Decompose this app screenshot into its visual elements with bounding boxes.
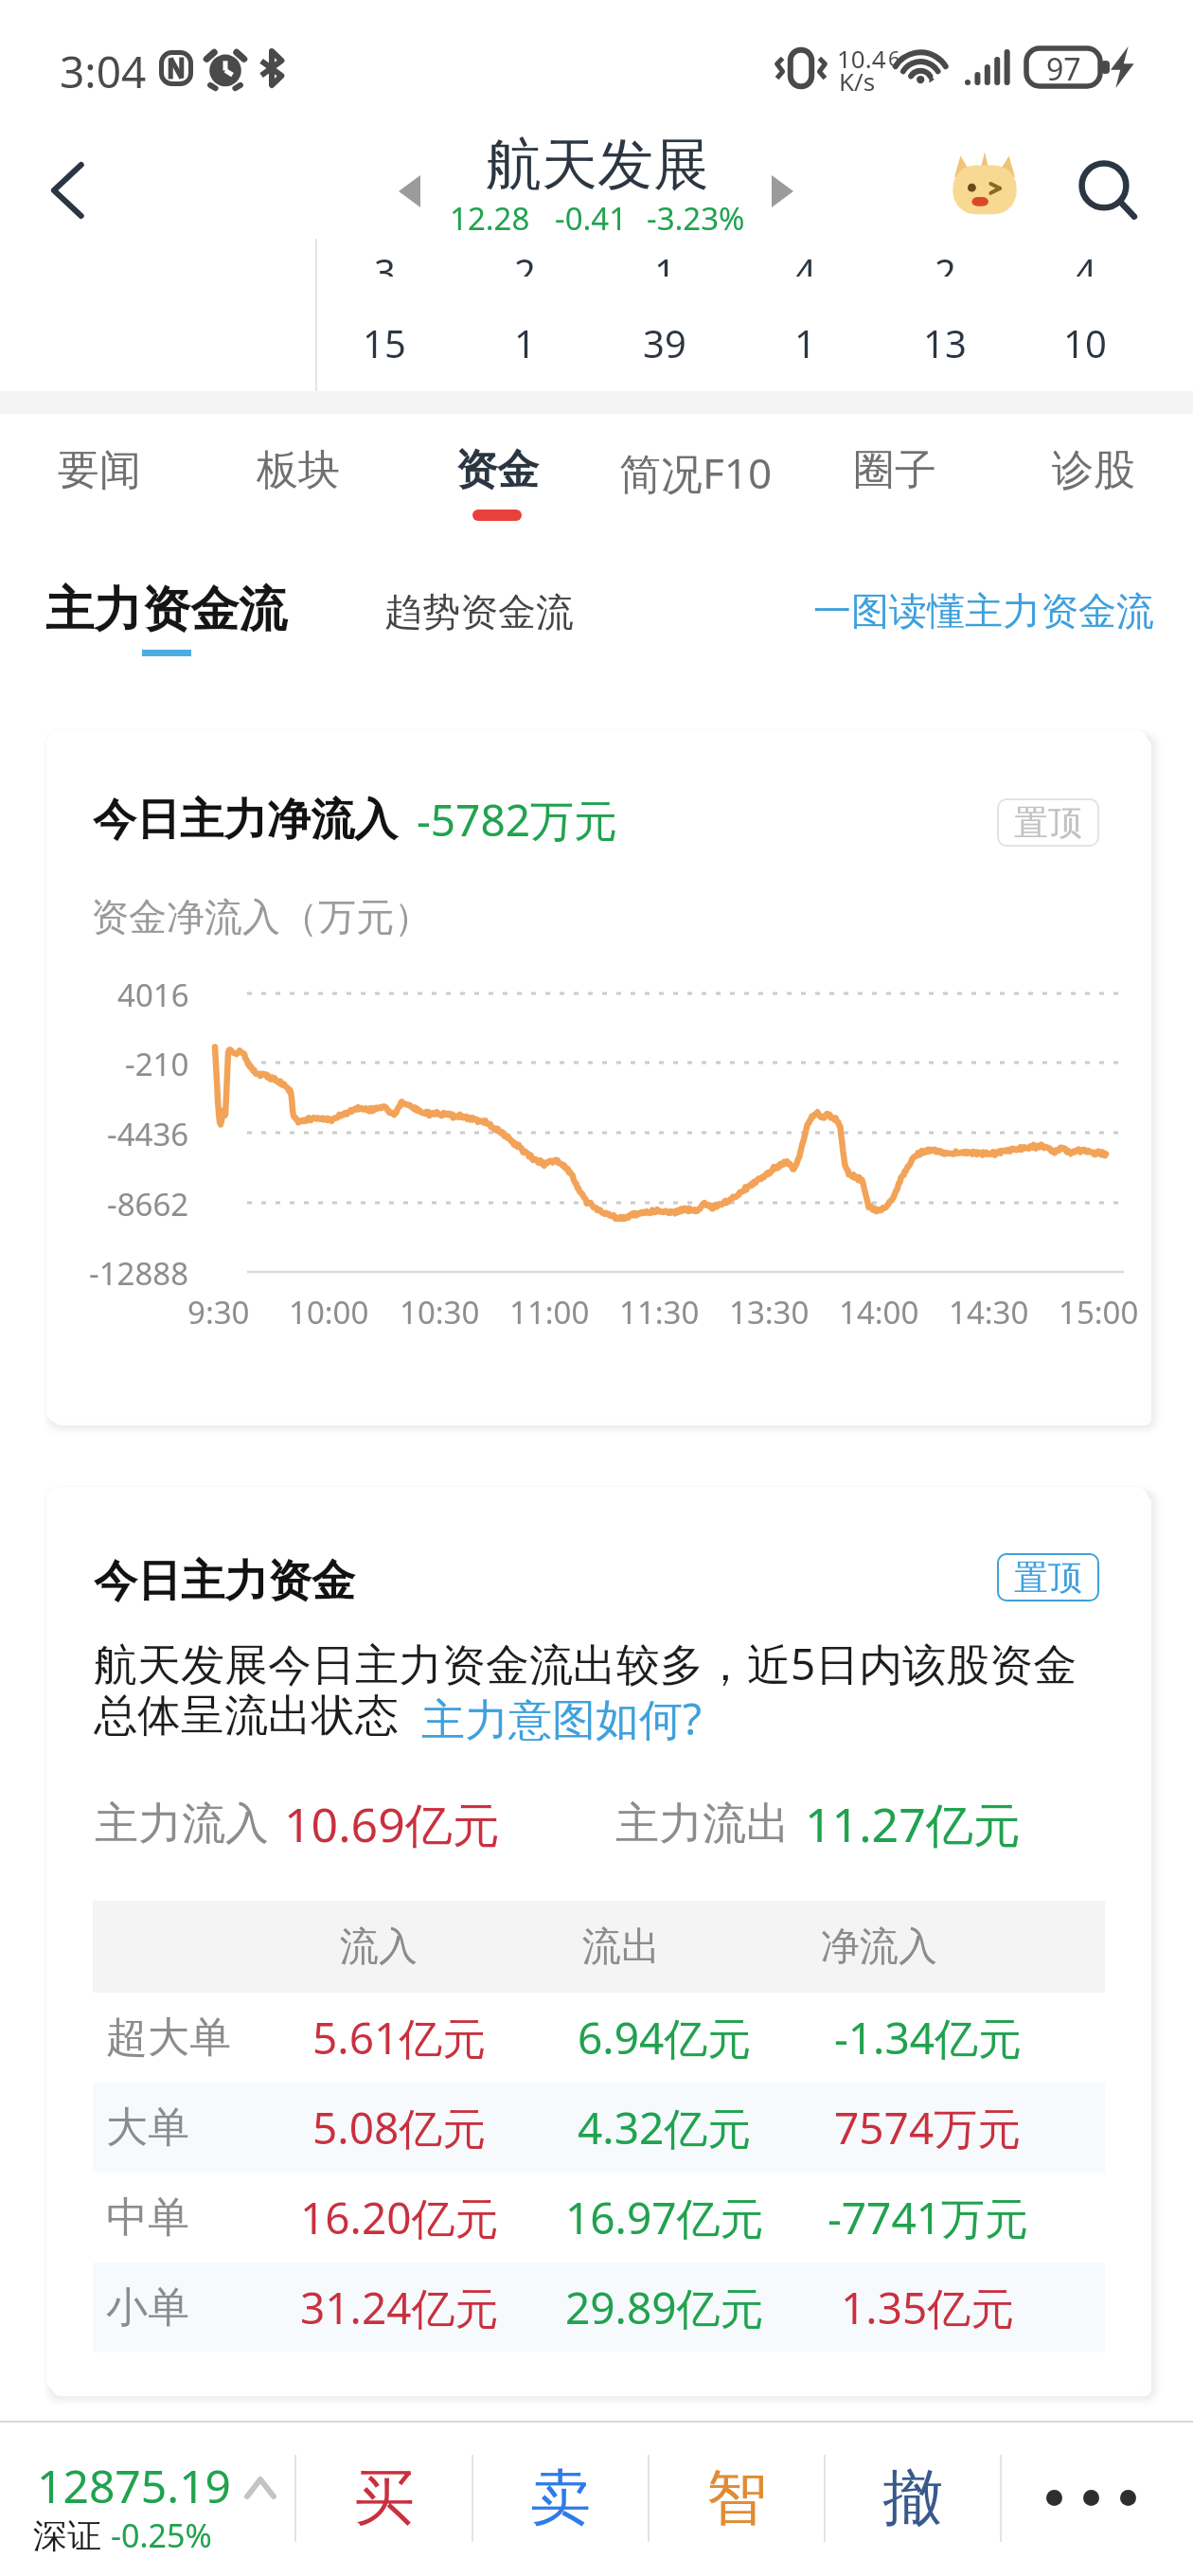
button[interactable]: 简况F10 <box>596 414 795 530</box>
button[interactable]: 卖 <box>473 2421 648 2574</box>
staticText: -3.23% <box>647 197 745 240</box>
staticText: 4016 <box>117 974 189 1013</box>
staticText: 6 <box>888 44 900 72</box>
staticText: 4.32亿元 <box>578 2098 752 2157</box>
button[interactable]: More <box>1002 2421 1180 2574</box>
button[interactable]: 板块 <box>199 414 398 530</box>
staticText: 板块 <box>257 444 340 496</box>
staticText: 总体呈流出状态 <box>94 1689 399 1744</box>
button[interactable]: 智 <box>650 2421 824 2574</box>
staticText: 1.35亿元 <box>841 2278 1015 2337</box>
staticText: -7741万元 <box>828 2188 1029 2247</box>
staticText: 10 <box>1063 317 1107 360</box>
staticText: 1 <box>654 259 676 277</box>
staticText: 15:00 <box>1059 1291 1139 1333</box>
staticText: -8662 <box>107 1183 189 1223</box>
button[interactable]: 资金 <box>398 414 596 530</box>
staticText: 39 <box>643 317 686 360</box>
staticText: 圈子 <box>853 444 936 496</box>
staticText: 深证 <box>33 2514 101 2557</box>
staticText: 买 <box>354 2460 415 2536</box>
staticText: 2 <box>514 259 536 277</box>
staticText: 置顶 <box>1014 1556 1082 1599</box>
staticText: 趋势资金流 <box>384 588 574 635</box>
staticText: 5.08亿元 <box>312 2098 487 2157</box>
staticText: 流入 <box>340 1923 418 1972</box>
button[interactable]: 12875.19 <box>19 2443 284 2561</box>
button[interactable]: 要闻 <box>0 414 199 530</box>
button[interactable]: 趋势资金流 <box>384 588 574 635</box>
staticText: 1 <box>514 317 536 360</box>
staticText: 12875.19 <box>37 2455 232 2516</box>
staticText: -4436 <box>107 1113 189 1153</box>
staticText: 一图读懂主力资金流 <box>813 587 1154 635</box>
staticText: 15 <box>363 317 406 360</box>
button[interactable]: 置顶 <box>997 798 1099 847</box>
staticText: 97 <box>1046 48 1081 86</box>
staticText: 主力流出 <box>615 1797 790 1851</box>
staticText: 14:00 <box>839 1291 919 1333</box>
staticText: 4 <box>1075 259 1096 277</box>
staticText: 超大单 <box>106 2012 231 2064</box>
staticText: 卖 <box>530 2460 591 2536</box>
staticText: 10:30 <box>400 1291 480 1333</box>
staticText: 航天发展 <box>486 130 709 200</box>
staticText: 流出 <box>582 1923 660 1972</box>
staticText: 11:30 <box>619 1291 700 1333</box>
staticText: 撤 <box>882 2460 943 2536</box>
staticText: K/s <box>839 64 876 98</box>
staticText: -12888 <box>89 1252 189 1292</box>
staticText: 4 <box>794 259 816 277</box>
button[interactable]: 置顶 <box>997 1553 1099 1601</box>
staticText: -0.25% <box>111 2513 212 2557</box>
button[interactable]: 主力资金流 <box>45 580 287 656</box>
staticText: 11:00 <box>509 1291 590 1333</box>
button[interactable]: Search <box>1074 152 1148 225</box>
staticText: 中单 <box>106 2191 189 2244</box>
staticText: 9:30 <box>187 1291 250 1333</box>
staticText: 2 <box>935 259 956 277</box>
button[interactable]: 诊股 <box>994 414 1193 530</box>
staticText: 3:04 <box>60 42 147 101</box>
staticText: 诊股 <box>1052 444 1135 496</box>
staticText: 10.69亿元 <box>284 1792 500 1856</box>
staticText: 置顶 <box>1014 801 1082 844</box>
staticText: 16.97亿元 <box>565 2188 764 2247</box>
staticText: 今日主力资金 <box>94 1554 355 1609</box>
staticText: -210 <box>125 1043 189 1082</box>
button[interactable]: Back <box>9 116 123 239</box>
button[interactable]: 买 <box>296 2421 472 2574</box>
staticText: 31.24亿元 <box>300 2278 499 2337</box>
staticText: 5.61亿元 <box>312 2008 487 2067</box>
staticText: 10.4 <box>837 42 886 75</box>
staticText: 11.27亿元 <box>805 1792 1021 1856</box>
staticText: 净流入 <box>821 1923 937 1972</box>
button[interactable]: 主力意图如何? <box>421 1689 702 1748</box>
staticText: 主力流入 <box>95 1797 269 1851</box>
staticText: 大单 <box>106 2102 189 2154</box>
button[interactable]: Mascot <box>947 151 1023 217</box>
staticText: 要闻 <box>58 444 141 496</box>
staticText: 6.94亿元 <box>578 2008 752 2067</box>
staticText: 1 <box>794 317 816 360</box>
staticText: 16.20亿元 <box>300 2188 499 2247</box>
button[interactable]: 一图读懂主力资金流 <box>813 587 1154 635</box>
staticText: 10:00 <box>289 1291 369 1333</box>
button[interactable]: 撤 <box>826 2421 1000 2574</box>
staticText: 资金净流入（万元） <box>91 893 432 940</box>
staticText: 29.89亿元 <box>565 2278 764 2337</box>
staticText: 主力资金流 <box>45 580 287 640</box>
staticText: 14:30 <box>949 1291 1029 1333</box>
staticText: 简况F10 <box>619 444 773 501</box>
staticText: -5782万元 <box>417 790 618 850</box>
staticText: 13:30 <box>729 1291 810 1333</box>
staticText: -0.41 <box>555 197 628 240</box>
staticText: -1.34亿元 <box>834 2008 1023 2067</box>
staticText: 12.28 <box>450 197 530 240</box>
staticText: 13 <box>923 317 967 360</box>
staticText: 7574万元 <box>834 2098 1022 2157</box>
staticText: 资金 <box>455 444 539 496</box>
button[interactable]: 圈子 <box>795 414 994 530</box>
staticText: 航天发展今日主力资金流出较多，近5日内该股资金 <box>94 1634 1077 1693</box>
staticText: 3 <box>374 259 396 277</box>
